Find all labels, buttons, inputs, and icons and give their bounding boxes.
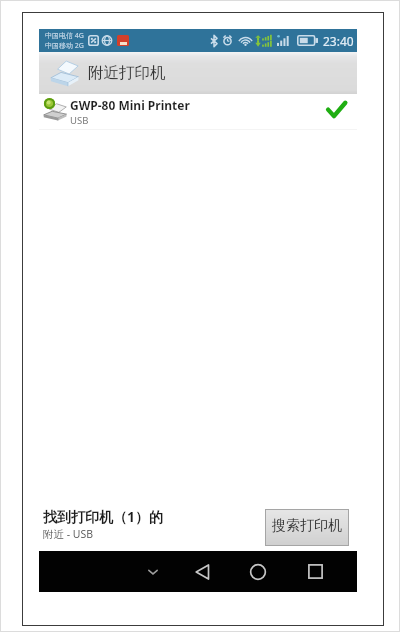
staticText: USB <box>70 114 89 127</box>
button[interactable]: Hide keyboard <box>133 551 173 592</box>
button[interactable]: Back <box>182 551 222 592</box>
staticText: 23:40 <box>323 33 354 49</box>
button[interactable]: Recent apps <box>295 551 335 592</box>
staticText: GWP-80 Mini Printer <box>70 97 190 113</box>
staticText: 中国移动 2G <box>45 41 84 51</box>
button[interactable]: GWP-80 Mini Printer <box>39 94 357 129</box>
staticText: 搜索打印机 <box>272 517 342 535</box>
button[interactable]: Home <box>238 551 278 592</box>
button[interactable]: 搜索打印机 <box>265 509 349 546</box>
staticText: 附近 - USB <box>43 527 94 541</box>
staticText: 找到打印机（1）的 <box>43 507 164 526</box>
staticText: 中国电信 4G <box>45 31 84 41</box>
staticText: 附近打印机 <box>88 63 166 83</box>
